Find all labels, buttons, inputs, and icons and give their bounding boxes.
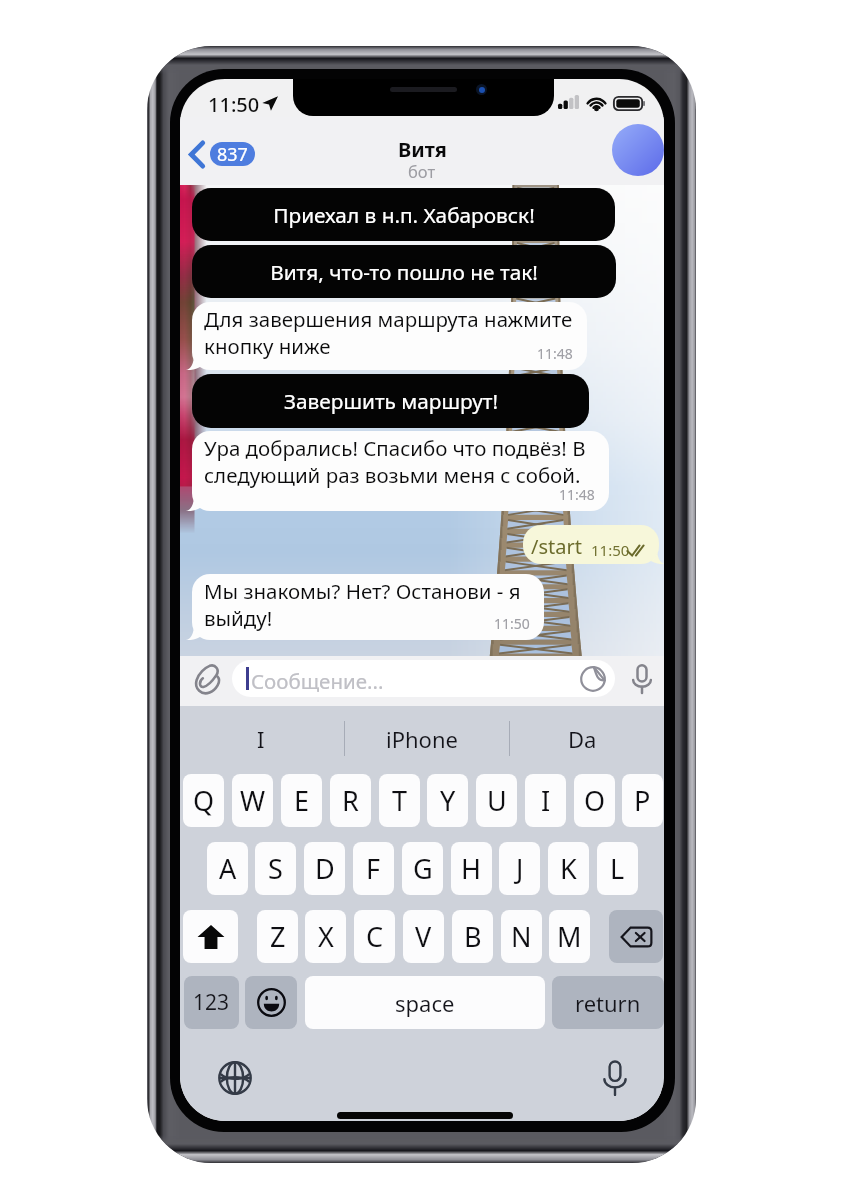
staticText: Z	[270, 918, 286, 955]
button[interactable]: Dictation	[592, 1055, 638, 1101]
staticText: U	[487, 782, 507, 819]
button[interactable]: A	[207, 842, 248, 895]
staticText: R	[342, 782, 359, 819]
staticText: Ура добрались! Спасибо что подвёз! В	[204, 434, 586, 462]
staticText: Приехал в н.п. Хабаровск!	[273, 201, 535, 229]
button[interactable]: P	[622, 774, 663, 827]
staticText: F	[366, 850, 381, 887]
button[interactable]: Shift	[183, 910, 238, 963]
staticText: V	[415, 918, 432, 955]
button[interactable]: Record voice message	[626, 660, 658, 698]
staticText: G	[413, 850, 433, 887]
staticText: K	[560, 850, 577, 887]
staticText: O	[584, 782, 606, 819]
button[interactable]: return	[552, 976, 664, 1029]
staticText: Витя, что-то пошло не так!	[270, 258, 538, 286]
button[interactable]: U	[476, 774, 517, 827]
staticText: Сообщение...	[251, 667, 384, 695]
button[interactable]: Ура добрались! Спасибо что подвёз! В	[192, 431, 609, 511]
staticText: H	[461, 850, 482, 887]
staticText: A	[219, 850, 237, 887]
button[interactable]: G	[402, 842, 443, 895]
staticText: T	[392, 782, 408, 819]
button[interactable]: E	[281, 774, 322, 827]
button[interactable]: J	[499, 842, 540, 895]
button[interactable]: N	[501, 910, 542, 963]
staticText: space	[395, 988, 455, 1018]
button[interactable]: K	[548, 842, 589, 895]
button[interactable]: C	[354, 910, 395, 963]
staticText: 11:48	[559, 485, 595, 504]
button[interactable]: iPhone	[341, 715, 502, 762]
staticText: следующий раз возьми меня с собой.	[204, 461, 581, 489]
staticText: X	[318, 918, 334, 955]
staticText: 11:50	[494, 614, 530, 633]
button[interactable]: X	[305, 910, 346, 963]
button[interactable]: T	[379, 774, 420, 827]
staticText: 123	[193, 988, 230, 1017]
button[interactable]: space	[305, 976, 545, 1029]
button[interactable]: Da	[502, 715, 663, 762]
staticText: Витя	[398, 136, 447, 163]
staticText: return	[575, 988, 641, 1018]
staticText: Мы знакомы? Нет? Останови - я	[204, 577, 521, 605]
staticText: Для завершения маршрута нажмите	[204, 305, 573, 333]
button[interactable]: S	[255, 842, 296, 895]
button[interactable]: Мы знакомы? Нет? Останови - я	[192, 574, 544, 640]
button[interactable]: H	[451, 842, 492, 895]
button[interactable]: Switch keyboard language	[212, 1055, 258, 1101]
staticText: C	[366, 918, 384, 955]
staticText: E	[294, 782, 310, 819]
button[interactable]: Сообщение...	[232, 660, 615, 697]
button[interactable]: Завершить маршрут!	[192, 374, 589, 428]
staticText: бот	[408, 160, 436, 182]
staticText: W	[240, 782, 266, 819]
button[interactable]: L	[597, 842, 638, 895]
staticText: Y	[440, 782, 456, 819]
button[interactable]: B	[452, 910, 493, 963]
staticText: L	[610, 850, 625, 887]
staticText: выйду!	[204, 604, 273, 632]
staticText: 11:48	[537, 344, 573, 363]
staticText: I	[257, 724, 265, 754]
staticText: S	[268, 850, 283, 887]
staticText: Завершить маршрут!	[284, 387, 498, 415]
button[interactable]: Витя, что-то пошло не так!	[192, 245, 616, 298]
staticText: кнопку ниже	[204, 332, 331, 360]
button[interactable]: W	[232, 774, 273, 827]
button[interactable]: Contact photo	[612, 124, 664, 176]
staticText: D	[315, 850, 335, 887]
staticText: Da	[568, 724, 597, 754]
button[interactable]: Для завершения маршрута нажмите	[192, 302, 587, 370]
staticText: Q	[193, 782, 215, 819]
staticText: 11:50	[208, 91, 260, 118]
button[interactable]: Y	[427, 774, 468, 827]
button[interactable]: R	[330, 774, 371, 827]
button[interactable]: V	[403, 910, 444, 963]
button[interactable]: Attach file	[190, 660, 224, 698]
staticText: iPhone	[386, 724, 458, 754]
staticText: N	[511, 918, 532, 955]
button[interactable]: F	[353, 842, 394, 895]
staticText: M	[557, 918, 582, 955]
button[interactable]: Stickers	[580, 666, 606, 692]
staticText: I	[541, 782, 551, 819]
button[interactable]: 123	[184, 976, 239, 1029]
staticText: B	[464, 918, 482, 955]
button[interactable]: O	[574, 774, 615, 827]
button[interactable]: Back, 837 chats	[183, 122, 265, 186]
button[interactable]: Приехал в н.п. Хабаровск!	[192, 188, 615, 241]
button[interactable]: Backspace	[609, 910, 663, 963]
staticText: 11:50	[591, 540, 630, 560]
staticText: P	[634, 782, 651, 819]
button[interactable]: M	[549, 910, 590, 963]
button[interactable]: Emoji keyboard	[245, 976, 297, 1029]
button[interactable]: I	[180, 715, 341, 762]
button[interactable]: Q	[183, 774, 224, 827]
staticText: 837	[217, 142, 248, 166]
staticText: /start	[531, 533, 582, 560]
button[interactable]: Z	[257, 910, 298, 963]
button[interactable]: I	[525, 774, 566, 827]
button[interactable]: D	[304, 842, 345, 895]
button[interactable]: /start	[523, 525, 659, 564]
